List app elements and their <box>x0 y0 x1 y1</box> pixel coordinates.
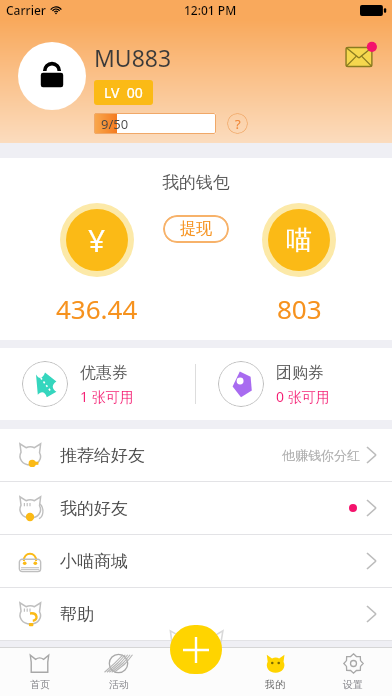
button[interactable]: 设置 <box>314 647 392 696</box>
staticText: 9/50 <box>101 115 129 133</box>
button[interactable]: 帮助 <box>0 588 392 640</box>
button[interactable]: Messages <box>344 40 378 74</box>
staticText: 436.44 <box>56 291 138 326</box>
staticText: 0 张可用 <box>276 387 330 406</box>
staticText: 提现 <box>180 219 212 239</box>
staticText: 我的好友 <box>60 498 128 519</box>
button[interactable]: 活动 <box>79 647 158 696</box>
staticText: 活动 <box>109 678 129 691</box>
button[interactable]: LV 00 <box>104 83 143 102</box>
button[interactable]: 小喵商城 <box>0 535 392 587</box>
staticText: 803 <box>277 291 322 326</box>
staticText: Carrier <box>6 2 46 18</box>
button[interactable]: Add <box>170 625 222 674</box>
button[interactable]: 推荐给好友 <box>0 429 392 481</box>
staticText: 小喵商城 <box>60 551 128 572</box>
button[interactable]: ¥ <box>60 203 134 277</box>
staticText: 我的 <box>265 678 285 691</box>
button[interactable]: 团购券 <box>196 348 392 420</box>
staticText: ¥ <box>88 220 106 261</box>
staticText: ? <box>235 115 241 133</box>
button[interactable]: Avatar <box>18 42 86 110</box>
button[interactable]: 我的 <box>236 647 314 696</box>
button[interactable]: 我的好友 <box>0 482 392 534</box>
staticText: 首页 <box>30 678 50 691</box>
staticText: 帮助 <box>60 604 94 625</box>
staticText: 团购券 <box>276 363 324 383</box>
staticText: LV 00 <box>104 83 143 102</box>
staticText: 12:01 PM <box>184 2 237 18</box>
staticText: 他赚钱你分红 <box>282 447 360 463</box>
button[interactable]: 优惠券 <box>0 348 195 420</box>
staticText: MU883 <box>94 42 172 73</box>
staticText: 优惠券 <box>80 363 128 383</box>
staticText: 1 张可用 <box>80 387 134 406</box>
staticText: 设置 <box>343 678 363 691</box>
button[interactable]: 首页 <box>0 647 79 696</box>
button[interactable]: 喵 <box>262 203 336 277</box>
button[interactable]: 提现 <box>163 215 229 243</box>
staticText: 我的钱包 <box>162 172 230 193</box>
staticText: 喵 <box>286 224 312 257</box>
staticText: 推荐给好友 <box>60 445 145 466</box>
button[interactable]: Help <box>227 113 248 134</box>
